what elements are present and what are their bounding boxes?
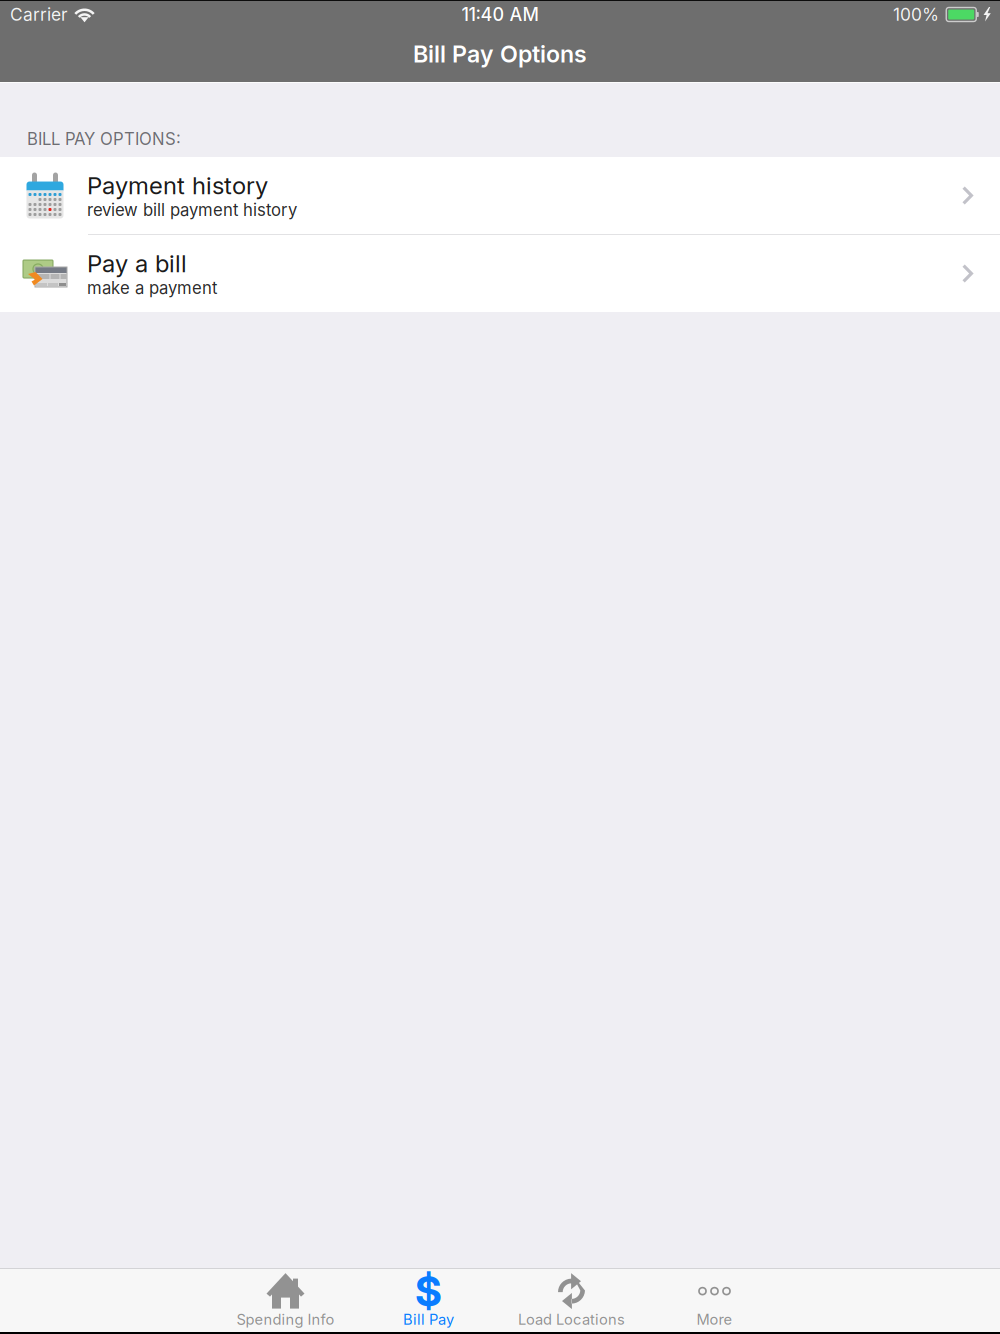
staticText: $ xyxy=(415,1266,442,1316)
staticText: Spending Info xyxy=(236,1311,334,1328)
button[interactable]: Payment history xyxy=(0,157,1000,234)
staticText: 100% xyxy=(893,4,939,25)
staticText: Bill Pay xyxy=(403,1311,454,1328)
staticText: review bill payment history xyxy=(87,200,297,220)
button[interactable]: Load Locations xyxy=(500,1269,643,1332)
staticText: Carrier xyxy=(10,4,68,25)
button[interactable]: Spending Info xyxy=(214,1269,357,1332)
staticText: BILL PAY OPTIONS: xyxy=(27,129,181,149)
staticText: 11:40 AM xyxy=(461,4,538,25)
staticText: Load Locations xyxy=(518,1311,625,1328)
staticText: Pay a bill xyxy=(87,249,187,278)
button[interactable]: Pay a bill xyxy=(0,235,1000,312)
button[interactable]: More xyxy=(643,1269,786,1332)
staticText: Bill Pay Options xyxy=(413,40,587,68)
staticText: Payment history xyxy=(87,171,268,200)
staticText: make a payment xyxy=(87,278,217,298)
button[interactable]: $ xyxy=(357,1269,500,1332)
staticText: More xyxy=(696,1311,732,1328)
